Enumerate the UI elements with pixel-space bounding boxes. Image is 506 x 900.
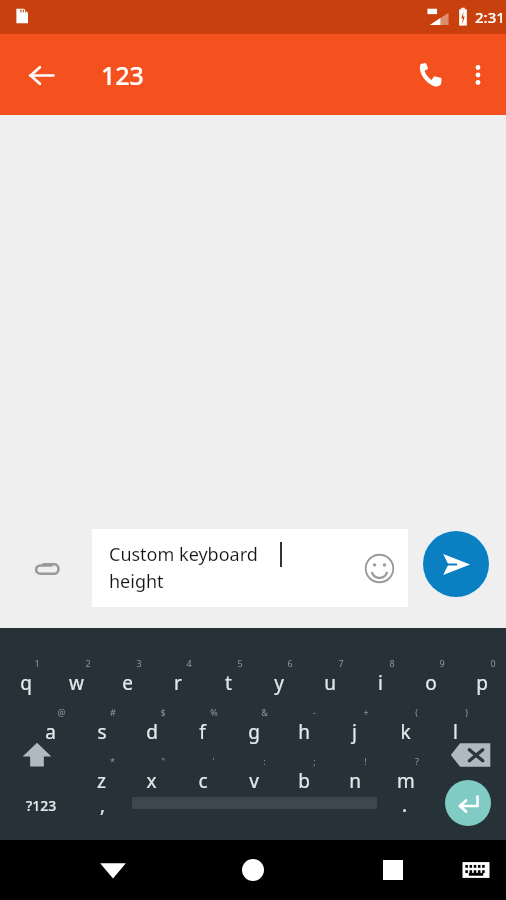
staticText: f [199,719,206,745]
staticText: v [249,768,259,794]
staticText: p [476,670,488,696]
button[interactable]: Shift [6,731,68,779]
button[interactable]: ; [278,755,329,801]
staticText: 0 [490,657,496,669]
staticText: k [400,719,411,745]
staticText: m [397,768,415,794]
button[interactable]: 9 [405,657,456,703]
staticText: u [324,670,336,696]
staticText: w [69,670,84,696]
button[interactable]: ? [380,755,431,801]
staticText: 4 [186,657,192,669]
button[interactable]: . [382,782,428,828]
button[interactable]: Call [402,47,458,103]
staticText: d [146,719,158,745]
staticText: n [349,768,361,794]
button[interactable]: @ [25,706,76,752]
staticText: a [45,719,56,745]
staticText: + [363,706,369,718]
staticText: x [146,768,157,794]
button[interactable]: ! [329,755,380,801]
button[interactable]: 6 [253,657,304,703]
button[interactable]: Attach file [20,543,72,595]
staticText: & [261,706,268,718]
button[interactable]: 5 [203,657,254,703]
staticText: @ [57,706,66,718]
button[interactable]: # [76,706,127,752]
staticText: 1 [34,657,40,669]
button[interactable]: 7 [304,657,355,703]
staticText: y [274,670,284,696]
staticText: h [298,719,310,745]
staticText: i [378,670,383,696]
staticText: 5 [237,657,243,669]
staticText: 9 [439,657,445,669]
staticText: j [352,719,357,745]
staticText: 2 [85,657,91,669]
button[interactable]: ) [430,706,481,752]
staticText: * [110,755,115,767]
button[interactable]: ' [177,755,228,801]
button[interactable]: Enter [445,780,491,826]
staticText: 7 [338,657,344,669]
staticText: s [97,719,107,745]
button[interactable]: 8 [355,657,406,703]
button[interactable]: & [228,706,279,752]
staticText: 6 [287,657,293,669]
staticText: ; [313,755,316,767]
button[interactable]: - [278,706,329,752]
staticText: : [263,755,266,767]
staticText: $ [160,706,166,718]
staticText: ) [465,706,468,718]
staticText: q [20,670,32,696]
button[interactable]: % [177,706,228,752]
staticText: - [313,706,316,718]
staticText: . [402,792,408,818]
button[interactable]: Back [13,47,69,103]
staticText: g [248,719,260,745]
button[interactable]: 3 [102,657,153,703]
button[interactable]: Home [225,842,281,898]
button[interactable]: 4 [152,657,203,703]
staticText: ? [415,755,419,767]
staticText: r [174,670,182,696]
staticText: " [161,755,165,767]
staticText: ( [415,706,418,718]
staticText: t [225,670,232,696]
staticText: ' [212,755,215,767]
button[interactable]: ( [380,706,431,752]
button[interactable]: + [329,706,380,752]
button[interactable]: Recent apps [365,840,421,900]
staticText: ! [364,755,367,767]
staticText: Custom keyboard height [109,542,258,593]
staticText: 2:31 [475,7,505,27]
button[interactable]: ?123 [8,782,74,828]
button[interactable]: Send [423,531,489,597]
staticText: 8 [389,657,395,669]
button[interactable]: Custom keyboard height [92,529,408,607]
button[interactable]: 0 [456,657,506,703]
button[interactable]: 2 [51,657,102,703]
staticText: 123 [101,58,144,92]
staticText: l [453,719,458,745]
staticText: e [122,670,133,696]
button[interactable]: Backspace [443,731,499,779]
staticText: % [210,706,218,718]
button[interactable]: , [78,782,128,828]
button[interactable]: $ [126,706,177,752]
staticText: z [97,768,106,794]
button[interactable]: : [228,755,279,801]
button[interactable]: 1 [0,657,51,703]
button[interactable]: Back [85,840,141,900]
button[interactable]: " [126,755,177,801]
staticText: , [100,792,106,818]
staticText: c [198,768,208,794]
staticText: ?123 [26,796,57,815]
staticText: 3 [136,657,142,669]
button[interactable]: Emoji [357,546,401,590]
staticText: o [425,670,437,696]
button[interactable]: Hide keyboard [452,840,500,900]
button[interactable]: * [76,755,127,801]
button[interactable]: More options [454,51,502,99]
